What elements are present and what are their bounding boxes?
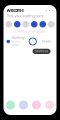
button[interactable]: Option [39,21,46,27]
button[interactable]: Option [5,21,12,27]
staticText: Pick your starting point [6,14,43,18]
button[interactable]: Option [22,21,29,27]
staticText: • • • [45,8,53,12]
button[interactable]: Continue [32,49,50,54]
button[interactable]: Option [48,21,54,27]
staticText: Welcome [6,8,23,13]
staticText: Choose a template [15,29,45,33]
staticText: Ready [41,40,51,43]
button[interactable]: Option [31,21,37,27]
staticText: Continue [34,50,48,53]
button[interactable]: Option [14,21,20,27]
button[interactable]: More [45,8,53,12]
staticText: 2 of 6 steps [12,40,21,47]
staticText: Drafting [12,36,24,40]
